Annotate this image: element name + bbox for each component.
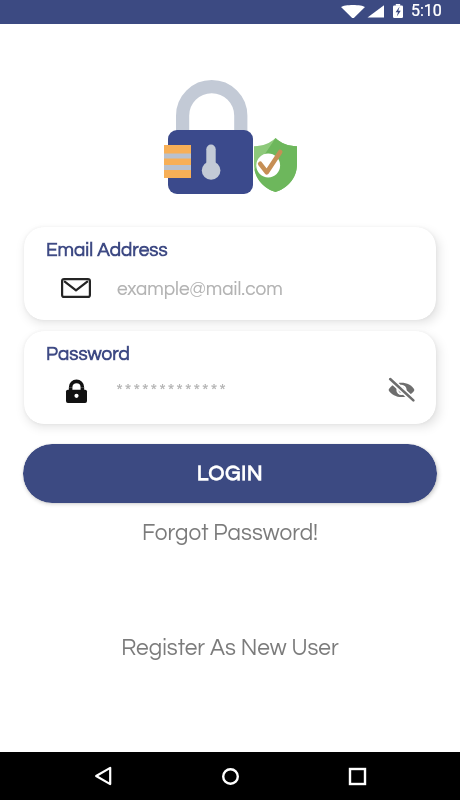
staticText: Email Address xyxy=(46,240,168,260)
button[interactable]: Email Address xyxy=(24,227,436,320)
button[interactable]: Recents xyxy=(333,752,381,800)
button[interactable]: Forgot Password! xyxy=(0,521,460,544)
button[interactable]: Register As New User xyxy=(0,636,460,659)
staticText: Password xyxy=(46,344,130,364)
button[interactable]: Back xyxy=(79,752,127,800)
other: Show password xyxy=(388,380,415,399)
staticText: example@mail.com xyxy=(117,279,283,299)
staticText: ************* xyxy=(116,381,228,401)
button[interactable]: Password xyxy=(24,331,436,424)
other: Password xyxy=(66,380,87,403)
staticText: 5:10 xyxy=(411,1,442,20)
staticText: LOGIN xyxy=(197,463,264,485)
other: Email xyxy=(61,278,91,298)
button[interactable]: LOGIN xyxy=(23,444,437,503)
button[interactable]: Home xyxy=(206,752,254,800)
